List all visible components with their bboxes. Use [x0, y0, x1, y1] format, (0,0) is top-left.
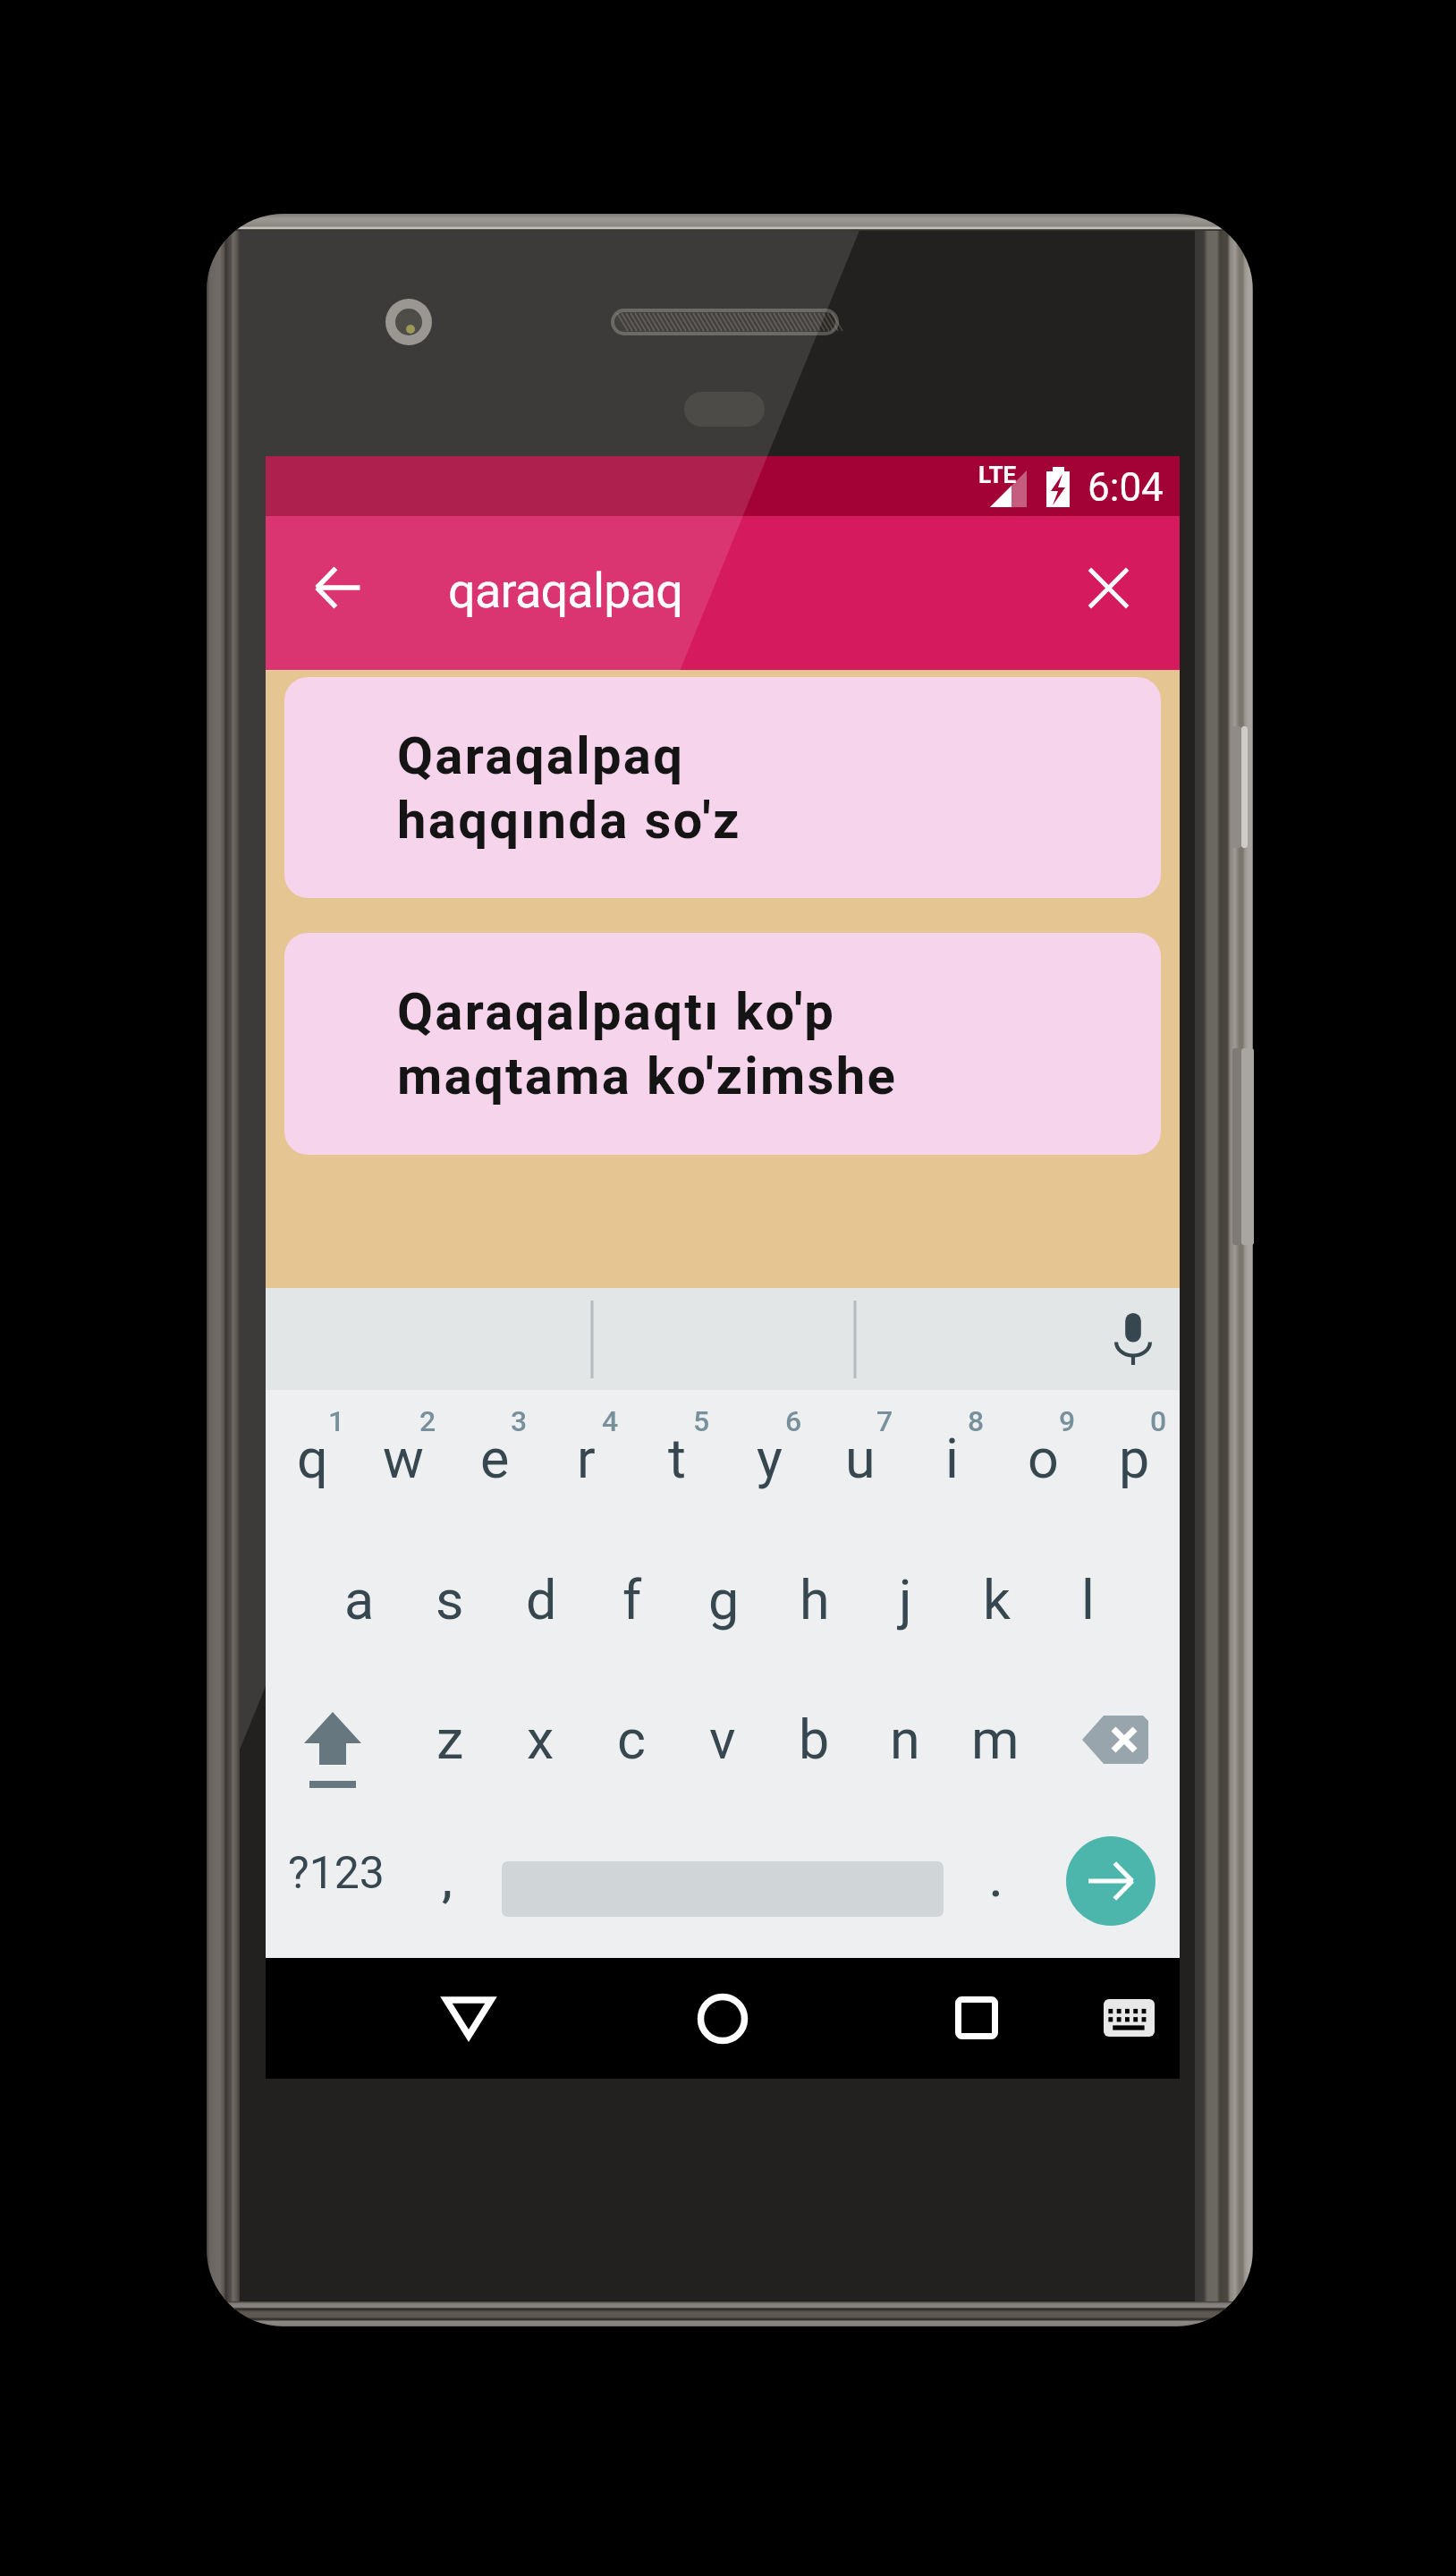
button[interactable]: Switch keyboard — [1084, 1973, 1173, 2063]
button[interactable] — [314, 1543, 405, 1684]
staticText: a — [344, 1568, 375, 1631]
staticText: e — [480, 1427, 510, 1490]
staticText: o — [1028, 1427, 1059, 1490]
button[interactable] — [953, 1829, 1039, 1947]
button[interactable] — [495, 1543, 587, 1684]
button[interactable]: Home — [673, 1970, 772, 2068]
button[interactable]: Clear search — [1067, 547, 1149, 629]
button[interactable] — [1088, 1402, 1180, 1534]
button[interactable] — [540, 1402, 631, 1534]
staticText: z — [436, 1707, 464, 1771]
staticText: 4 — [602, 1404, 619, 1438]
staticText: j — [899, 1568, 912, 1631]
staticText: w — [383, 1427, 424, 1490]
staticText: f — [622, 1568, 642, 1631]
staticText: 6 — [785, 1404, 802, 1438]
staticText: 1 — [328, 1404, 345, 1438]
button[interactable]: Recent apps — [927, 1969, 1026, 2067]
button[interactable] — [677, 1684, 768, 1826]
staticText: y — [757, 1427, 783, 1490]
staticText: 8 — [968, 1404, 985, 1438]
button[interactable]: Qaraqalpaq haqqında so'z — [284, 677, 1161, 898]
button[interactable] — [268, 1829, 411, 1947]
button[interactable]: Qaraqalpaqtı ko'p maqtama ko'zimshe — [284, 933, 1161, 1155]
button[interactable] — [678, 1543, 769, 1684]
button[interactable]: Enter — [1066, 1836, 1155, 1926]
button[interactable] — [404, 1684, 495, 1826]
button[interactable] — [859, 1684, 951, 1826]
button[interactable]: Shift — [268, 1684, 402, 1826]
button[interactable] — [859, 1543, 951, 1684]
staticText: s — [436, 1568, 464, 1631]
button[interactable] — [768, 1684, 859, 1826]
button[interactable] — [495, 1684, 586, 1826]
staticText: 6:04 — [1088, 464, 1164, 511]
staticText: r — [577, 1427, 596, 1490]
staticText: 3 — [511, 1404, 528, 1438]
staticText: g — [708, 1568, 740, 1631]
button[interactable] — [951, 1543, 1042, 1684]
staticText: k — [983, 1568, 1011, 1631]
staticText: q — [297, 1427, 328, 1490]
button[interactable] — [631, 1402, 723, 1534]
staticText: 9 — [1059, 1404, 1076, 1438]
button[interactable]: Back — [297, 547, 379, 629]
button[interactable] — [724, 1402, 815, 1534]
staticText: p — [1119, 1427, 1150, 1490]
button[interactable]: Space — [501, 1829, 944, 1947]
staticText: c — [617, 1707, 646, 1771]
button[interactable] — [586, 1684, 677, 1826]
staticText: b — [799, 1707, 830, 1771]
button[interactable] — [815, 1402, 906, 1534]
button[interactable]: Backspace — [1064, 1684, 1181, 1826]
staticText: 5 — [693, 1404, 710, 1438]
button[interactable] — [1042, 1543, 1133, 1684]
staticText: t — [668, 1427, 686, 1490]
staticText: m — [971, 1707, 1020, 1771]
staticText: h — [800, 1568, 830, 1631]
button[interactable]: Voice input — [1100, 1306, 1166, 1372]
button[interactable] — [404, 1543, 495, 1684]
staticText: l — [1081, 1568, 1095, 1631]
button[interactable] — [769, 1543, 860, 1684]
staticText: 2 — [419, 1404, 436, 1438]
button[interactable] — [267, 1402, 358, 1534]
staticText: ?123 — [288, 1847, 385, 1900]
staticText: 0 — [1150, 1404, 1167, 1438]
staticText: qaraqalpaq — [448, 563, 683, 619]
staticText: LTE — [978, 462, 1017, 488]
button[interactable]: Hide keyboard — [419, 1969, 518, 2067]
button[interactable] — [449, 1402, 540, 1534]
staticText: Qaraqalpaq haqqında so'z — [397, 725, 741, 851]
button[interactable] — [358, 1402, 449, 1534]
staticText: i — [945, 1427, 959, 1490]
staticText: Qaraqalpaqtı ko'p maqtama ko'zimshe — [397, 981, 898, 1106]
staticText: v — [709, 1707, 736, 1771]
staticText: d — [526, 1568, 557, 1631]
button[interactable] — [997, 1402, 1088, 1534]
staticText: . — [989, 1851, 1003, 1908]
staticText: n — [890, 1707, 920, 1771]
staticText: , — [442, 1851, 453, 1908]
button[interactable] — [587, 1543, 678, 1684]
staticText: u — [845, 1427, 876, 1490]
staticText: 7 — [876, 1404, 893, 1438]
button[interactable] — [950, 1684, 1041, 1826]
button[interactable] — [906, 1402, 997, 1534]
staticText: x — [527, 1707, 554, 1771]
button[interactable] — [413, 1829, 499, 1947]
